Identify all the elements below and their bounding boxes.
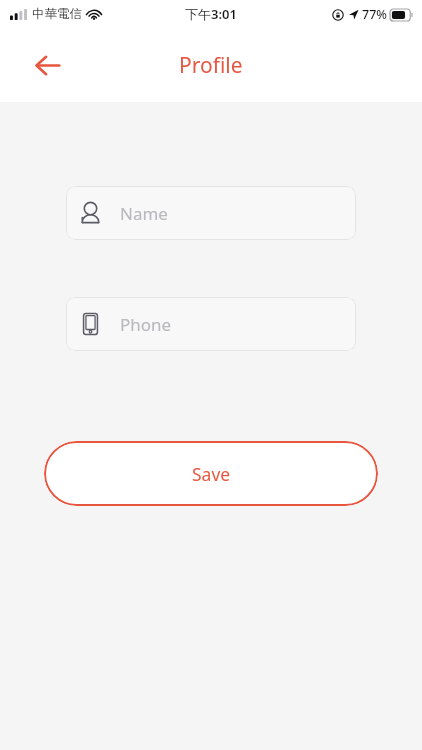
- staticText: Save: [192, 462, 231, 486]
- button[interactable]: Save: [44, 441, 378, 506]
- button[interactable]: Name: [66, 186, 356, 240]
- button[interactable]: Back: [26, 43, 70, 87]
- staticText: Profile: [179, 51, 243, 80]
- staticText: 中華電信: [32, 6, 82, 22]
- staticText: 下午3:01: [185, 5, 237, 23]
- button[interactable]: Phone: [66, 297, 356, 351]
- staticText: 77%: [362, 6, 387, 23]
- staticText: Name: [120, 202, 168, 225]
- staticText: Phone: [120, 313, 172, 336]
